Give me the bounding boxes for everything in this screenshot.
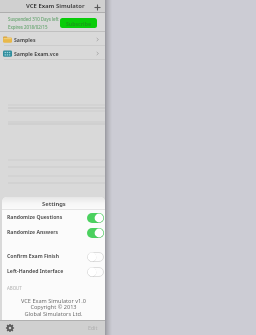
button[interactable]: Off bbox=[87, 252, 104, 262]
staticText: Randomize Questions bbox=[7, 214, 63, 221]
staticText: Settings bbox=[42, 200, 66, 208]
staticText: Subscribe bbox=[66, 20, 92, 27]
button[interactable]: On bbox=[87, 228, 104, 238]
button[interactable]: Samples bbox=[0, 32, 105, 46]
staticText: Left-Handed Interface bbox=[7, 268, 64, 275]
button[interactable]: Randomize Questions bbox=[2, 210, 105, 225]
staticText: ABOUT bbox=[7, 285, 22, 291]
button[interactable]: Settings bbox=[4, 322, 16, 334]
staticText: VCE Exam Simulator bbox=[26, 2, 85, 10]
staticText: Randomize Answers bbox=[7, 229, 59, 236]
button[interactable]: Randomize Answers bbox=[2, 225, 105, 240]
staticText: VCE Exam Simulator v1.0 Copyright © 2013… bbox=[2, 297, 105, 318]
staticText: Sample Exam.vce bbox=[14, 50, 59, 57]
button[interactable]: Edit bbox=[88, 324, 98, 331]
staticText: Confirm Exam Finish bbox=[7, 253, 59, 260]
button[interactable]: Confirm Exam Finish bbox=[2, 249, 105, 264]
button[interactable]: Left-Handed Interface bbox=[2, 264, 105, 279]
staticText: Samples bbox=[14, 36, 36, 43]
button[interactable]: On bbox=[87, 213, 104, 223]
staticText: Edit bbox=[88, 324, 98, 331]
staticText: Suspended 310 Days left bbox=[8, 16, 59, 22]
button[interactable]: Off bbox=[87, 267, 104, 277]
button[interactable]: Add bbox=[92, 2, 102, 12]
button[interactable]: Sample Exam.vce bbox=[0, 46, 105, 60]
staticText: Expires 2018/02/15 bbox=[8, 24, 48, 30]
button[interactable]: Subscribe bbox=[60, 18, 97, 28]
